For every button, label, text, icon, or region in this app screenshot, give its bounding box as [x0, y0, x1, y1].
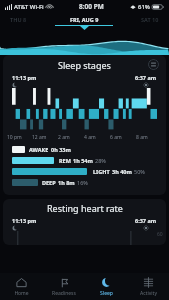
button[interactable]: FRI, AUG 9: [49, 13, 119, 30]
staticText: 6:37 am: [135, 74, 157, 81]
staticText: 11:13 pm: [12, 74, 37, 81]
staticText: Home: [14, 290, 29, 297]
button[interactable]: Home: [0, 273, 43, 300]
staticText: 1h 8m: [58, 179, 75, 186]
button[interactable]: Resting heart rate: [3, 199, 166, 245]
staticText: THU 8: [10, 16, 27, 23]
button[interactable]: Readiness: [43, 273, 85, 300]
staticText: 3h 40m: [112, 168, 132, 175]
button[interactable]: Sleep stages: [3, 55, 166, 195]
staticText: 2 am: [58, 134, 70, 141]
staticText: 8:00 PM: [79, 2, 104, 11]
staticText: 6:37 am: [135, 217, 157, 224]
staticText: 50%: [134, 168, 145, 175]
staticText: 28%: [95, 157, 106, 164]
button[interactable]: DEEP: [12, 177, 157, 188]
staticText: DEEP: [42, 179, 56, 186]
staticText: 16%: [77, 179, 88, 186]
button[interactable]: Sleep: [85, 273, 127, 300]
button[interactable]: AWAKE: [12, 144, 157, 155]
staticText: REM: [59, 157, 71, 164]
button[interactable]: LIGHT: [12, 166, 157, 177]
staticText: AWAKE: [29, 146, 49, 153]
staticText: SAT 10: [141, 16, 159, 23]
staticText: 1h 54m: [73, 157, 93, 164]
button[interactable]: More info: [148, 59, 159, 70]
staticText: 4 am: [84, 134, 96, 141]
button[interactable]: THU 8: [8, 13, 29, 23]
staticText: Resting heart rate: [47, 202, 123, 214]
staticText: 10 pm: [7, 134, 22, 141]
staticText: 8 am: [136, 134, 148, 141]
staticText: Readiness: [52, 290, 76, 297]
staticText: 6 am: [110, 134, 122, 141]
staticText: Sleep stages: [58, 59, 111, 71]
staticText: 61%: [138, 3, 150, 11]
staticText: 12 am: [32, 134, 47, 141]
button[interactable]: Activity: [127, 273, 169, 300]
staticText: AT&T Wi-Fi: [14, 3, 44, 11]
staticText: Sleep: [100, 290, 113, 297]
button[interactable]: REM: [12, 155, 157, 166]
staticText: FRI, AUG 9: [70, 16, 99, 23]
staticText: LIGHT: [93, 168, 110, 175]
staticText: 11:13 pm: [12, 217, 37, 224]
button[interactable]: SAT 10: [139, 13, 161, 23]
staticText: 0h 33m: [51, 146, 71, 153]
staticText: Activity: [140, 290, 157, 297]
staticText: 60: [157, 231, 163, 238]
